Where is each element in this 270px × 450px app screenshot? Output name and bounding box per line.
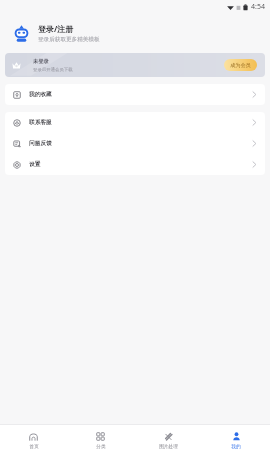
button[interactable]: 联系客服	[5, 112, 265, 133]
button[interactable]: 分类	[67, 425, 134, 450]
staticText: 分类	[96, 443, 106, 449]
staticText: 登录/注册	[38, 23, 74, 34]
staticText: 首页	[29, 443, 39, 449]
staticText: 设置	[29, 161, 41, 168]
button[interactable]: 我的收藏	[5, 84, 265, 105]
staticText: 成为会员	[230, 62, 251, 69]
staticText: 登录后开通会员下载	[33, 67, 73, 73]
button[interactable]: 首页	[0, 425, 67, 450]
staticText: 未登录	[33, 58, 49, 65]
button[interactable]: 成为会员	[224, 59, 257, 71]
staticText: 图片处理	[159, 443, 178, 449]
staticText: 我的收藏	[29, 91, 52, 98]
button[interactable]: 设置	[5, 154, 265, 175]
button[interactable]: 登录/注册	[0, 13, 270, 53]
button[interactable]: 未登录	[5, 53, 265, 77]
staticText: 我的	[231, 443, 241, 449]
staticText: 问题反馈	[29, 140, 52, 147]
button[interactable]: 问题反馈	[5, 133, 265, 154]
button[interactable]: 图片处理	[134, 425, 202, 450]
staticText: 4:54	[251, 2, 265, 12]
button[interactable]: 我的	[202, 425, 270, 450]
staticText: 联系客服	[29, 119, 52, 126]
staticText: 登录后获取更多精美模板	[38, 36, 100, 43]
